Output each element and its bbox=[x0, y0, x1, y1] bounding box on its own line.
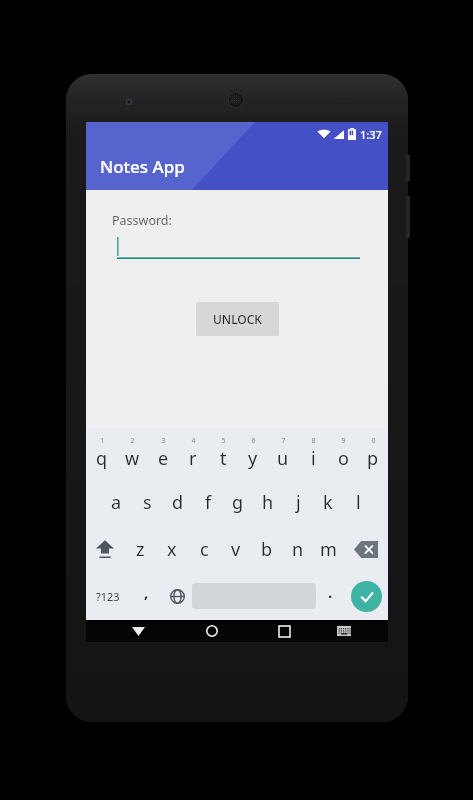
staticText: UNLOCK bbox=[213, 311, 262, 327]
button[interactable]: Home bbox=[188, 620, 235, 642]
staticText: l bbox=[356, 490, 361, 515]
button[interactable]: UNLOCK bbox=[196, 302, 279, 336]
staticText: x bbox=[167, 537, 177, 562]
staticText: g bbox=[232, 490, 244, 515]
staticText: c bbox=[200, 537, 209, 562]
staticText: 0 bbox=[371, 436, 376, 446]
staticText: 8 bbox=[311, 436, 316, 446]
staticText: p bbox=[367, 446, 379, 471]
button[interactable]: j bbox=[283, 478, 313, 526]
staticText: 6 bbox=[251, 436, 256, 446]
button[interactable]: f bbox=[193, 478, 223, 526]
button[interactable]: 9 bbox=[328, 428, 358, 478]
staticText: w bbox=[125, 446, 140, 471]
button[interactable]: a bbox=[101, 478, 132, 526]
button[interactable]: 0 bbox=[358, 428, 388, 478]
button[interactable]: Backspace bbox=[344, 526, 388, 572]
button[interactable]: l bbox=[343, 478, 373, 526]
button[interactable]: 3 bbox=[148, 428, 178, 478]
button[interactable]: k bbox=[313, 478, 343, 526]
staticText: e bbox=[158, 446, 169, 471]
staticText: k bbox=[323, 490, 333, 515]
button[interactable]: v bbox=[220, 526, 251, 572]
button[interactable]: ?123 bbox=[86, 572, 130, 620]
button[interactable]: . bbox=[316, 572, 344, 620]
button[interactable]: b bbox=[251, 526, 282, 572]
staticText: 4 bbox=[191, 436, 196, 446]
staticText: u bbox=[277, 446, 289, 471]
button[interactable]: 6 bbox=[238, 428, 268, 478]
button[interactable]: Shift bbox=[86, 526, 124, 572]
button[interactable]: n bbox=[282, 526, 313, 572]
button[interactable]: s bbox=[132, 478, 163, 526]
staticText: z bbox=[136, 537, 145, 562]
button[interactable]: 4 bbox=[178, 428, 208, 478]
button[interactable]: , bbox=[130, 572, 162, 620]
staticText: n bbox=[292, 537, 304, 562]
button[interactable]: h bbox=[253, 478, 283, 526]
staticText: , bbox=[144, 582, 149, 602]
staticText: 1:37 bbox=[360, 127, 382, 142]
staticText: 9 bbox=[341, 436, 346, 446]
staticText: t bbox=[220, 446, 227, 471]
staticText: r bbox=[189, 446, 197, 471]
button[interactable] bbox=[117, 237, 360, 259]
button[interactable]: Back bbox=[115, 620, 162, 642]
staticText: h bbox=[262, 490, 274, 515]
button[interactable]: Recent apps bbox=[261, 620, 308, 642]
button[interactable]: 5 bbox=[208, 428, 238, 478]
button[interactable]: x bbox=[156, 526, 188, 572]
staticText: v bbox=[231, 537, 241, 562]
staticText: b bbox=[261, 537, 273, 562]
staticText: y bbox=[248, 446, 258, 471]
staticText: 2 bbox=[130, 436, 135, 446]
button[interactable]: 7 bbox=[268, 428, 298, 478]
staticText: 7 bbox=[281, 436, 286, 446]
staticText: . bbox=[328, 582, 333, 602]
staticText: 1 bbox=[100, 436, 105, 446]
button[interactable]: m bbox=[313, 526, 344, 572]
button[interactable]: d bbox=[163, 478, 193, 526]
staticText: Password: bbox=[112, 212, 172, 229]
button[interactable]: z bbox=[124, 526, 156, 572]
staticText: q bbox=[96, 446, 108, 471]
button[interactable]: 1 bbox=[86, 428, 117, 478]
staticText: o bbox=[338, 446, 349, 471]
staticText: m bbox=[320, 537, 337, 562]
button[interactable]: 2 bbox=[117, 428, 148, 478]
staticText: i bbox=[311, 446, 316, 471]
staticText: j bbox=[296, 490, 301, 515]
button[interactable]: c bbox=[188, 526, 220, 572]
button[interactable]: Switch keyboard bbox=[320, 620, 367, 642]
staticText: a bbox=[111, 490, 122, 515]
staticText: 3 bbox=[161, 436, 166, 446]
staticText: f bbox=[205, 490, 212, 515]
staticText: 5 bbox=[221, 436, 226, 446]
staticText: ?123 bbox=[96, 589, 120, 604]
button[interactable]: 8 bbox=[298, 428, 328, 478]
button[interactable]: Change language bbox=[162, 572, 192, 620]
button[interactable]: g bbox=[223, 478, 253, 526]
button[interactable]: Enter bbox=[344, 572, 388, 620]
staticText: s bbox=[143, 490, 152, 515]
staticText: d bbox=[172, 490, 184, 515]
staticText: Notes App bbox=[100, 155, 185, 178]
